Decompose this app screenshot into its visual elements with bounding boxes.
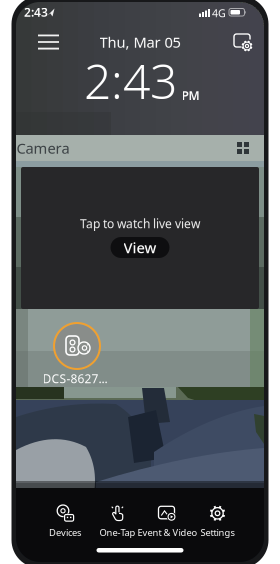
- button[interactable]: Watch live view: [21, 167, 259, 309]
- staticText: Settings: [200, 526, 234, 539]
- button[interactable]: Grid view: [237, 142, 249, 154]
- button[interactable]: Settings: [200, 503, 234, 539]
- button[interactable]: DCS-8627 camera: [53, 322, 101, 370]
- staticText: View: [123, 238, 156, 257]
- staticText: 4G: [212, 6, 226, 20]
- staticText: Thu, Mar 05: [99, 32, 180, 52]
- button[interactable]: Devices: [49, 503, 81, 539]
- staticText: Event & Video: [137, 526, 197, 539]
- staticText: 2:43: [84, 49, 177, 112]
- staticText: PM: [181, 87, 199, 103]
- button[interactable]: Event & Video: [137, 503, 197, 539]
- button[interactable]: One-Tap: [99, 503, 135, 539]
- button[interactable]: Manage devices: [232, 31, 256, 55]
- staticText: Devices: [49, 526, 81, 539]
- staticText: One-Tap: [99, 526, 135, 539]
- staticText: Camera: [16, 138, 69, 158]
- staticText: Tap to watch live view: [80, 215, 200, 231]
- staticText: DCS-8627...: [42, 370, 107, 386]
- staticText: 2:43: [24, 4, 48, 20]
- button[interactable]: Menu: [38, 34, 59, 49]
- button[interactable]: View: [110, 237, 169, 258]
